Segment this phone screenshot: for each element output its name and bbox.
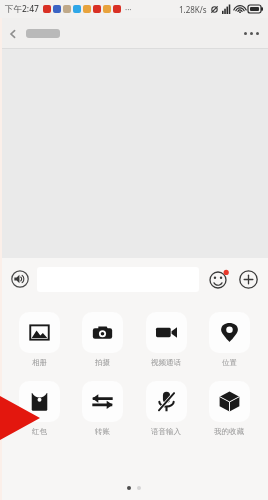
- staticText: 1.28K/s: [179, 4, 207, 15]
- staticText: 红包: [32, 427, 47, 436]
- button[interactable]: More options: [234, 18, 268, 49]
- staticText: 位置: [222, 358, 237, 367]
- button[interactable]: 位置: [200, 312, 258, 367]
- button[interactable]: 转账: [73, 381, 131, 436]
- button[interactable]: 我的收藏: [200, 381, 258, 436]
- staticText: 视频通话: [151, 358, 181, 367]
- button[interactable]: 语音输入: [137, 381, 195, 436]
- button[interactable]: 红包: [10, 381, 68, 436]
- button[interactable]: More functions: [235, 266, 261, 292]
- staticText: 相册: [32, 358, 47, 367]
- staticText: ···: [125, 4, 132, 15]
- button[interactable]: Emoji: [206, 266, 232, 292]
- staticText: 我的收藏: [214, 427, 244, 436]
- staticText: 下午2:47: [5, 3, 39, 15]
- staticText: 转账: [95, 427, 110, 436]
- staticText: 语音输入: [151, 427, 181, 436]
- button[interactable]: 相册: [10, 312, 68, 367]
- button[interactable]: 拍摄: [73, 312, 131, 367]
- button[interactable]: Voice message: [7, 266, 33, 292]
- button[interactable]: Back: [0, 18, 26, 49]
- button[interactable]: 视频通话: [137, 312, 195, 367]
- staticText: 拍摄: [95, 358, 110, 367]
